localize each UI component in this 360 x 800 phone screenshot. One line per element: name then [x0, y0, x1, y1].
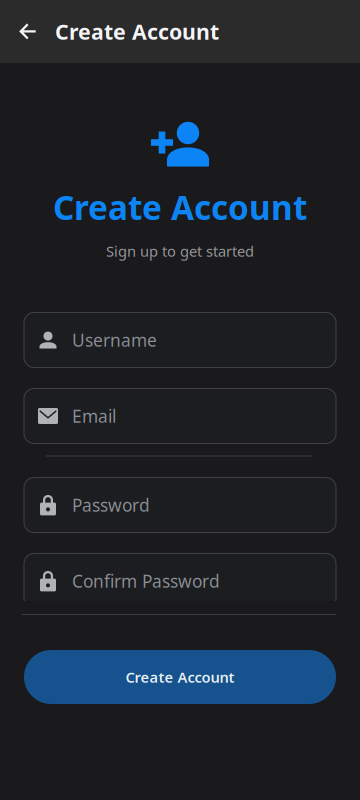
staticText: Create Account [55, 17, 219, 46]
button[interactable]: Confirm Password [24, 553, 336, 608]
staticText: Email [72, 404, 116, 427]
staticText: Sign up to get started [106, 241, 254, 261]
button[interactable]: Back [10, 9, 46, 53]
staticText: Username [72, 328, 157, 351]
staticText: Password [72, 493, 150, 516]
staticText: Create Account [125, 667, 234, 687]
button[interactable]: Username [24, 312, 336, 367]
staticText: Confirm Password [72, 569, 220, 592]
button[interactable]: Email [24, 388, 336, 443]
staticText: Create Account [53, 185, 307, 229]
button[interactable]: Password [24, 477, 336, 532]
button[interactable]: Create Account [24, 650, 336, 704]
